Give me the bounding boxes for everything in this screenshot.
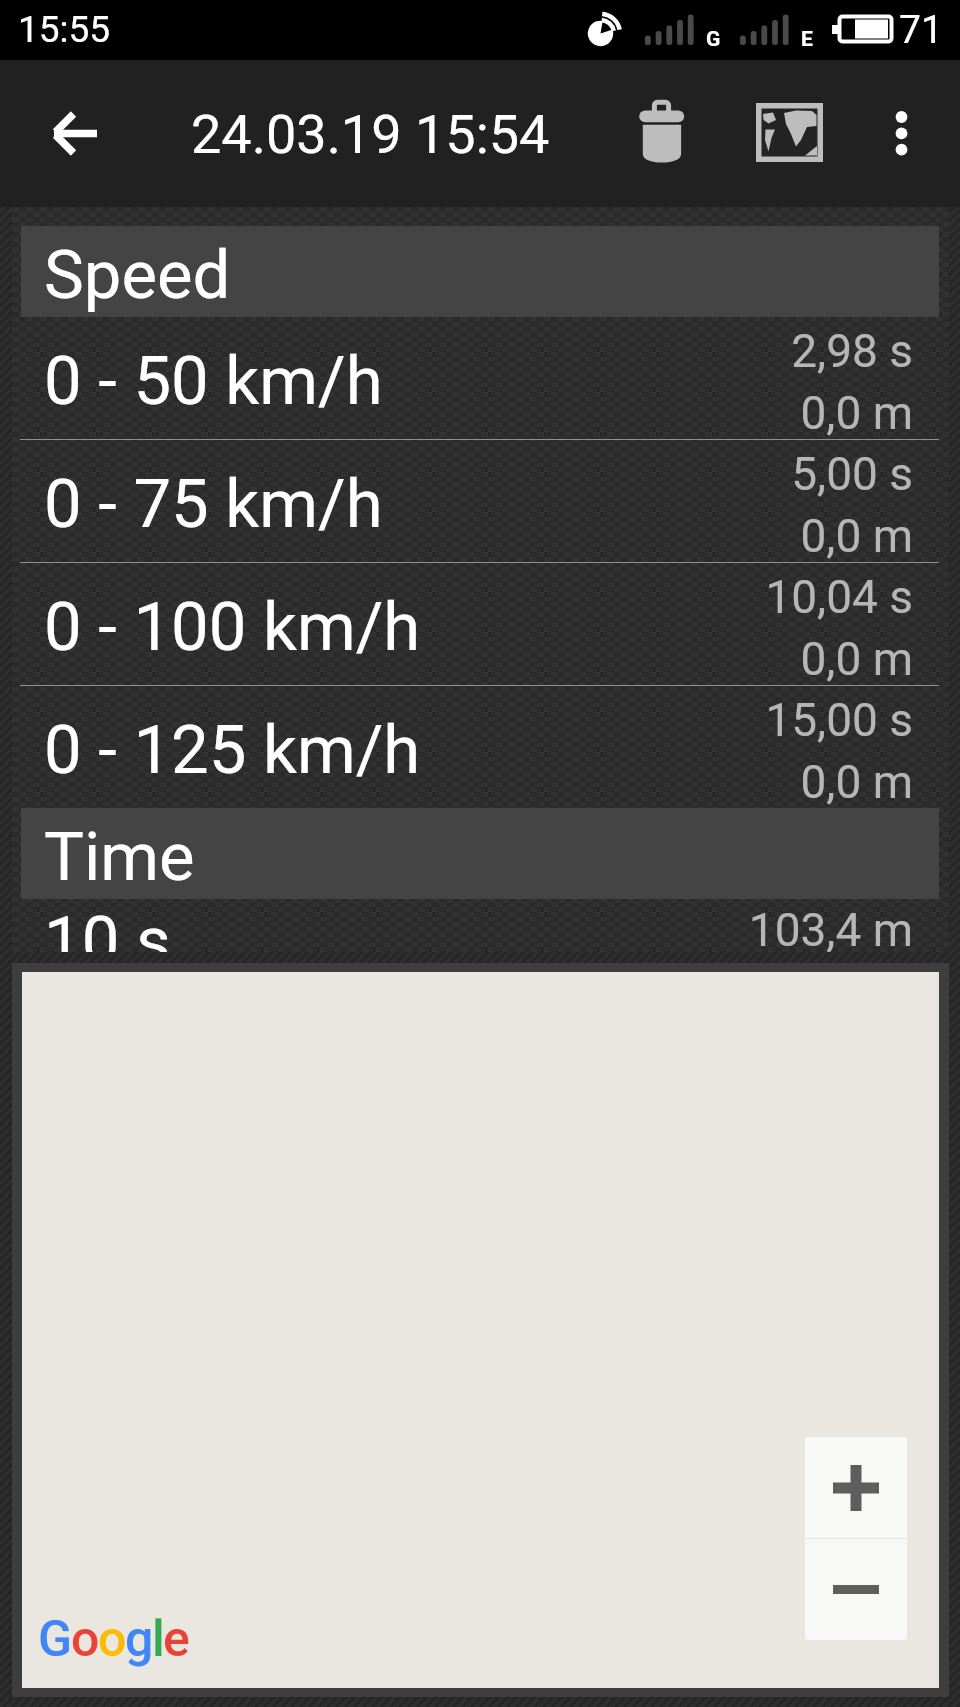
- staticText: Time: [44, 818, 195, 897]
- staticText: G: [706, 27, 721, 52]
- staticText: 10 s: [44, 902, 707, 952]
- button[interactable]: Speed: [21, 226, 939, 317]
- staticText: 15,00 s: [765, 693, 913, 747]
- staticText: 0,0 m: [800, 509, 913, 563]
- staticText: 0,0 m: [800, 386, 913, 440]
- button[interactable]: Map: [22, 972, 939, 1688]
- staticText: 10,04 s: [765, 570, 913, 624]
- button[interactable]: Show map: [740, 80, 840, 180]
- button[interactable]: 10 s: [44, 899, 913, 952]
- button[interactable]: Zoom out: [805, 1539, 907, 1640]
- staticText: 0,0 m: [800, 755, 913, 809]
- staticText: o: [71, 1610, 98, 1669]
- staticText: 0 - 125 km/h: [44, 711, 765, 790]
- button[interactable]: 0 - 50 km/h: [44, 317, 913, 439]
- staticText: 0,0 m: [800, 632, 913, 686]
- button[interactable]: 0 - 100 km/h: [44, 563, 913, 685]
- staticText: 103,4 m: [748, 903, 913, 952]
- staticText: 5,00 s: [791, 447, 913, 501]
- staticText: e: [163, 1610, 188, 1669]
- staticText: g: [125, 1610, 152, 1669]
- staticText: G: [38, 1610, 71, 1669]
- button[interactable]: Back: [25, 83, 125, 183]
- staticText: l: [152, 1610, 163, 1669]
- staticText: 15:55: [18, 8, 111, 51]
- staticText: 0 - 50 km/h: [44, 342, 791, 421]
- button[interactable]: 0 - 75 km/h: [44, 440, 913, 562]
- staticText: E: [801, 27, 813, 52]
- button[interactable]: Time: [21, 808, 939, 899]
- button[interactable]: More options: [852, 83, 952, 183]
- button[interactable]: Delete: [619, 89, 705, 179]
- staticText: 24.03.19 15:54: [191, 103, 550, 166]
- button[interactable]: 0 - 125 km/h: [44, 686, 913, 808]
- staticText: o: [98, 1610, 125, 1669]
- button[interactable]: Zoom in: [805, 1437, 907, 1538]
- staticText: 71: [899, 7, 943, 53]
- staticText: 0 - 75 km/h: [44, 465, 791, 544]
- staticText: 0 - 100 km/h: [44, 588, 765, 667]
- staticText: Speed: [44, 236, 231, 315]
- staticText: 2,98 s: [791, 324, 913, 378]
